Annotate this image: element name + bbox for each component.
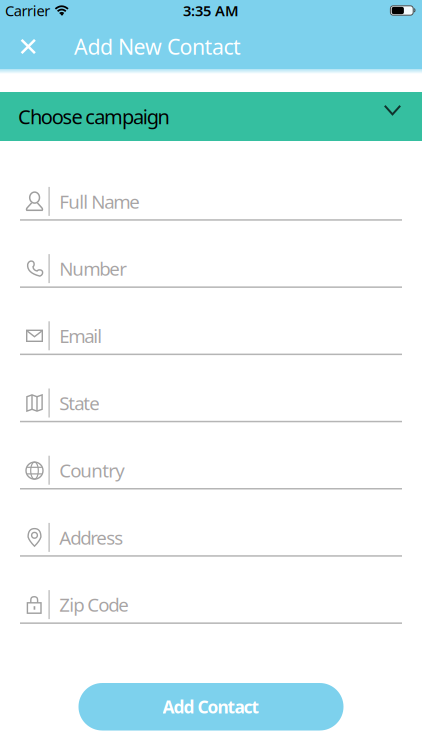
button[interactable]: Full Name [0, 153, 422, 221]
button[interactable]: Choose campaign [0, 92, 422, 141]
button[interactable]: Number [0, 221, 422, 288]
staticText: Email [59, 323, 102, 348]
staticText: Address [59, 525, 123, 550]
staticText: Number [59, 256, 127, 281]
button[interactable]: Add Contact [78, 683, 343, 730]
staticText: Country [59, 458, 125, 483]
staticText: Carrier [5, 1, 50, 20]
button[interactable]: Country [0, 422, 422, 489]
button[interactable]: Zip Code [0, 557, 422, 624]
staticText: Add Contact [162, 695, 259, 718]
staticText: State [59, 391, 100, 415]
button[interactable]: Address [0, 489, 422, 557]
staticText: 3:35 AM [183, 1, 239, 20]
staticText: Zip Code [59, 592, 129, 617]
button[interactable] [0, 24, 45, 68]
button[interactable]: Email [0, 288, 422, 355]
button[interactable]: State [0, 355, 422, 422]
staticText: Add New Contact [74, 32, 241, 61]
staticText: Choose campaign [18, 103, 170, 130]
staticText: Full Name [59, 189, 140, 214]
